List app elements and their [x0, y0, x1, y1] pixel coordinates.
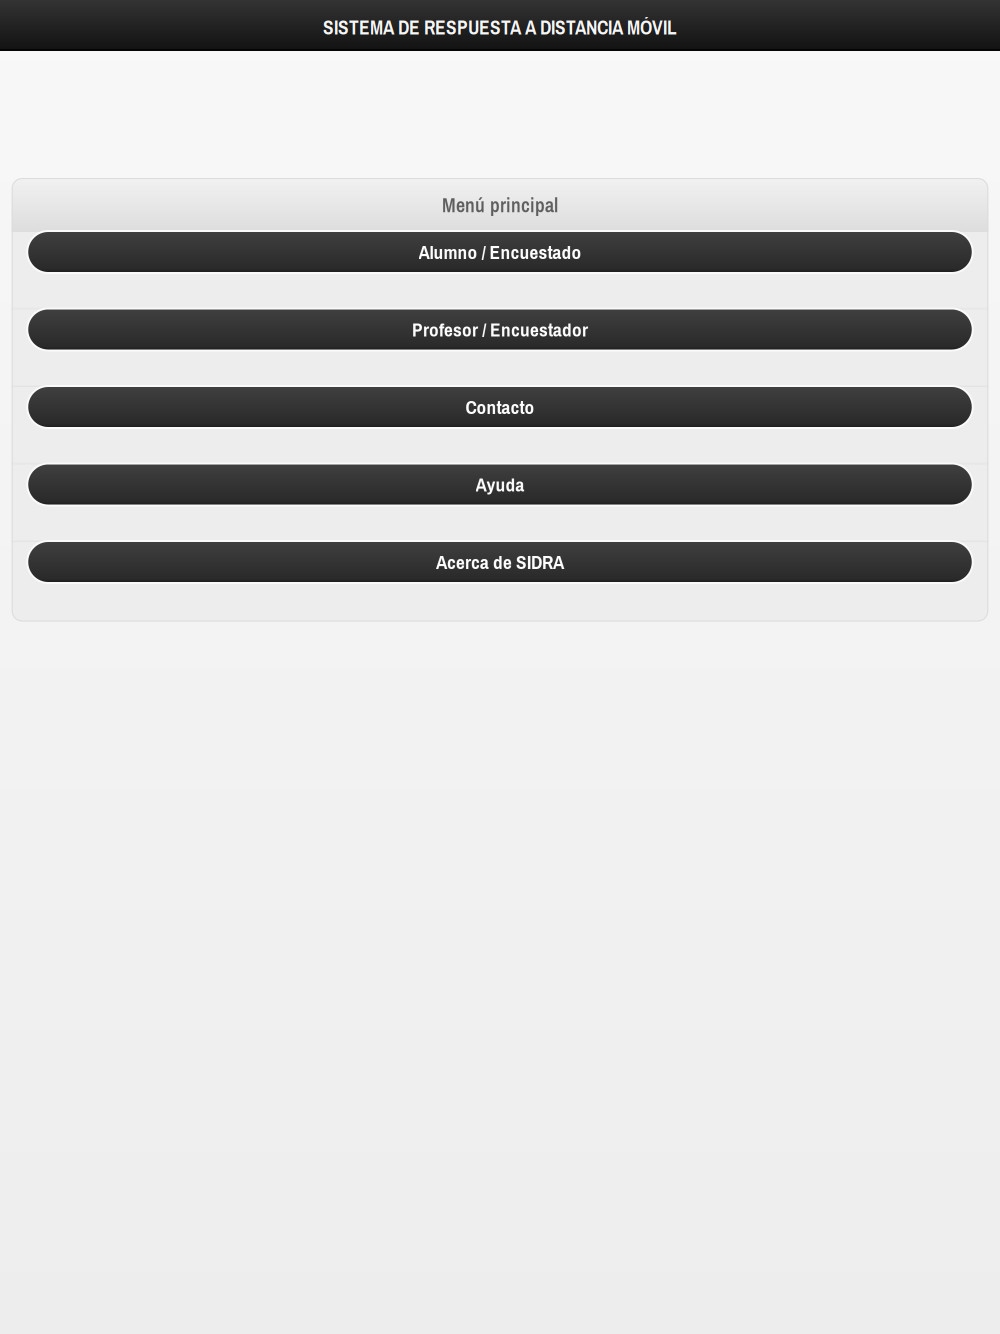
- button[interactable]: Ayuda: [12, 464, 988, 542]
- staticText: Ayuda: [475, 472, 524, 497]
- button[interactable]: Contacto: [12, 387, 988, 464]
- button[interactable]: Alumno / Encuestado: [12, 232, 988, 309]
- staticText: SISTEMA DE RESPUESTA A DISTANCIA MÓVIL: [323, 14, 677, 40]
- staticText: Menú principal: [442, 191, 558, 218]
- staticText: Acerca de SIDRA: [436, 549, 564, 575]
- button[interactable]: Profesor / Encuestador: [12, 309, 988, 387]
- staticText: Contacto: [465, 394, 534, 420]
- button[interactable]: Acerca de SIDRA: [12, 542, 988, 621]
- staticText: Profesor / Encuestador: [412, 317, 588, 342]
- staticText: Alumno / Encuestado: [418, 239, 581, 265]
